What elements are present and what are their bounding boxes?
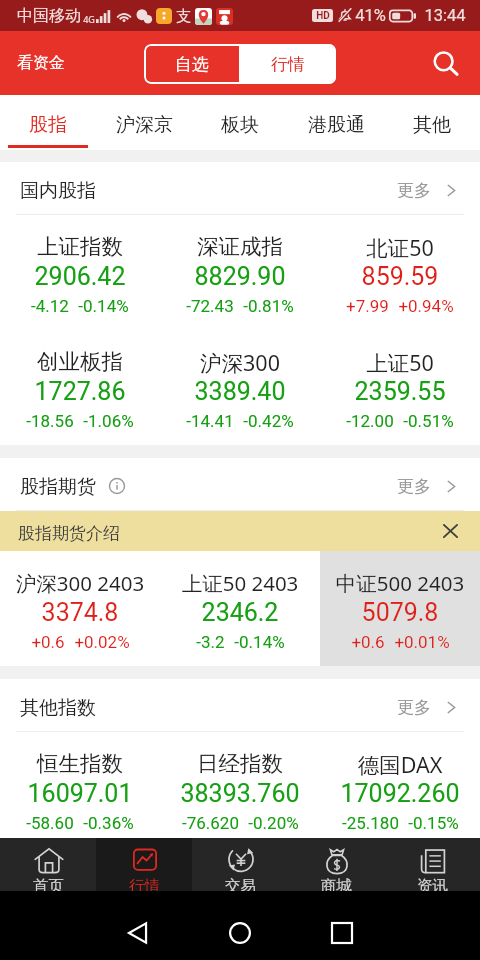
staticText: 38393.760 bbox=[160, 779, 320, 808]
button[interactable]: 交易 bbox=[192, 838, 288, 891]
staticText: 2359.55 bbox=[320, 377, 480, 406]
button[interactable]: 德国DAX bbox=[320, 732, 480, 838]
button[interactable]: 沪深京 bbox=[96, 95, 192, 150]
button[interactable]: 其他指数 bbox=[0, 679, 480, 731]
staticText: 看资金 bbox=[17, 53, 65, 73]
staticText: -0.42% bbox=[243, 411, 294, 431]
staticText: 41% bbox=[355, 6, 386, 25]
button[interactable]: 北证50 bbox=[320, 215, 480, 330]
staticText: 商城 bbox=[321, 876, 352, 891]
staticText: 1727.86 bbox=[0, 377, 160, 406]
staticText: 13:44 bbox=[424, 6, 466, 25]
staticText: 上证指数 bbox=[0, 233, 160, 260]
button[interactable]: 板块 bbox=[192, 95, 288, 150]
staticText: 日经指数 bbox=[160, 750, 320, 777]
button[interactable]: 沪深300 bbox=[160, 330, 320, 445]
staticText: 沪深300 2403 bbox=[0, 569, 160, 597]
staticText: -14.41 bbox=[186, 411, 234, 431]
staticText: 2906.42 bbox=[0, 262, 160, 291]
button[interactable]: 行情 bbox=[239, 44, 336, 84]
staticText: -72.43 bbox=[186, 296, 234, 316]
button[interactable]: 上证50 2403 bbox=[160, 551, 320, 666]
staticText: -0.51% bbox=[403, 411, 454, 431]
staticText: 自选 bbox=[175, 54, 209, 75]
staticText: -25.180 bbox=[342, 813, 399, 833]
staticText: 行情 bbox=[129, 876, 160, 891]
staticText: -76.620 bbox=[182, 813, 239, 833]
button[interactable]: 首页 bbox=[0, 838, 96, 891]
button[interactable]: 深证成指 bbox=[160, 215, 320, 330]
staticText: 3389.40 bbox=[160, 377, 320, 406]
staticText: -0.15% bbox=[408, 813, 459, 833]
button[interactable]: 创业板指 bbox=[0, 330, 160, 445]
button[interactable]: 行情 bbox=[96, 838, 192, 891]
staticText: 中国移动 bbox=[17, 6, 81, 26]
button[interactable]: 股指 bbox=[0, 95, 96, 150]
button[interactable]: Recents bbox=[322, 913, 362, 953]
staticText: 更多 bbox=[397, 697, 431, 718]
button[interactable]: 国内股指 bbox=[0, 162, 480, 214]
staticText: -0.14% bbox=[234, 632, 285, 652]
staticText: -0.81% bbox=[243, 296, 294, 316]
button[interactable]: 日经指数 bbox=[160, 732, 320, 838]
staticText: 板块 bbox=[221, 113, 259, 137]
staticText: -0.36% bbox=[83, 813, 134, 833]
staticText: 4G bbox=[83, 13, 95, 25]
staticText: 创业板指 bbox=[0, 348, 160, 375]
button[interactable]: 股指期货 bbox=[0, 458, 480, 510]
staticText: 港股通 bbox=[308, 113, 365, 137]
button[interactable]: Search bbox=[427, 45, 463, 81]
staticText: -18.56 bbox=[26, 411, 74, 431]
button[interactable]: 沪深300 2403 bbox=[0, 551, 160, 666]
staticText: -4.12 bbox=[31, 296, 69, 316]
staticText: -1.06% bbox=[83, 411, 134, 431]
staticText: 沪深京 bbox=[116, 113, 173, 137]
button[interactable]: 商城 bbox=[288, 838, 384, 891]
staticText: 2346.2 bbox=[160, 598, 320, 627]
staticText: 北证50 bbox=[320, 233, 480, 262]
staticText: 16097.01 bbox=[0, 779, 160, 808]
staticText: +0.6 bbox=[31, 632, 65, 652]
button[interactable]: 中证500 2403 bbox=[320, 551, 480, 666]
staticText: 上证50 bbox=[320, 348, 480, 377]
staticText: 恒生指数 bbox=[0, 750, 160, 777]
staticText: 股指 bbox=[29, 113, 67, 137]
button[interactable]: Home bbox=[220, 913, 260, 953]
staticText: 上证50 2403 bbox=[160, 569, 320, 597]
staticText: 深证成指 bbox=[160, 233, 320, 260]
button[interactable]: 其他 bbox=[384, 95, 480, 150]
staticText: 8829.90 bbox=[160, 262, 320, 291]
staticText: 其他指数 bbox=[20, 696, 96, 720]
button[interactable]: 看资金 bbox=[17, 53, 65, 73]
staticText: 沪深300 bbox=[160, 348, 320, 377]
staticText: +7.99 bbox=[346, 296, 389, 316]
button[interactable]: 上证指数 bbox=[0, 215, 160, 330]
staticText: -0.14% bbox=[78, 296, 129, 316]
button[interactable]: 恒生指数 bbox=[0, 732, 160, 838]
staticText: -58.60 bbox=[26, 813, 74, 833]
staticText: -0.20% bbox=[248, 813, 299, 833]
staticText: 德国DAX bbox=[320, 750, 480, 779]
staticText: 其他 bbox=[413, 113, 451, 137]
button[interactable]: 上证50 bbox=[320, 330, 480, 445]
button[interactable]: Back bbox=[117, 913, 157, 953]
staticText: +0.02% bbox=[74, 632, 130, 652]
button[interactable]: Close bbox=[436, 517, 464, 545]
staticText: 3374.8 bbox=[0, 598, 160, 627]
staticText: 首页 bbox=[33, 876, 64, 891]
staticText: -12.00 bbox=[346, 411, 394, 431]
staticText: 股指期货介绍 bbox=[18, 523, 120, 544]
staticText: 交易 bbox=[225, 876, 256, 891]
staticText: 5079.8 bbox=[320, 598, 480, 627]
staticText: 中证500 2403 bbox=[320, 569, 480, 597]
staticText: 17092.260 bbox=[320, 779, 480, 808]
staticText: +0.01% bbox=[394, 632, 450, 652]
staticText: 更多 bbox=[397, 180, 431, 201]
staticText: -3.2 bbox=[196, 632, 225, 652]
staticText: 更多 bbox=[397, 476, 431, 497]
button[interactable]: 资讯 bbox=[384, 838, 480, 891]
staticText: 资讯 bbox=[417, 876, 448, 891]
staticText: 股指期货 bbox=[20, 475, 96, 499]
button[interactable]: 港股通 bbox=[288, 95, 384, 150]
button[interactable]: 自选 bbox=[144, 44, 239, 84]
